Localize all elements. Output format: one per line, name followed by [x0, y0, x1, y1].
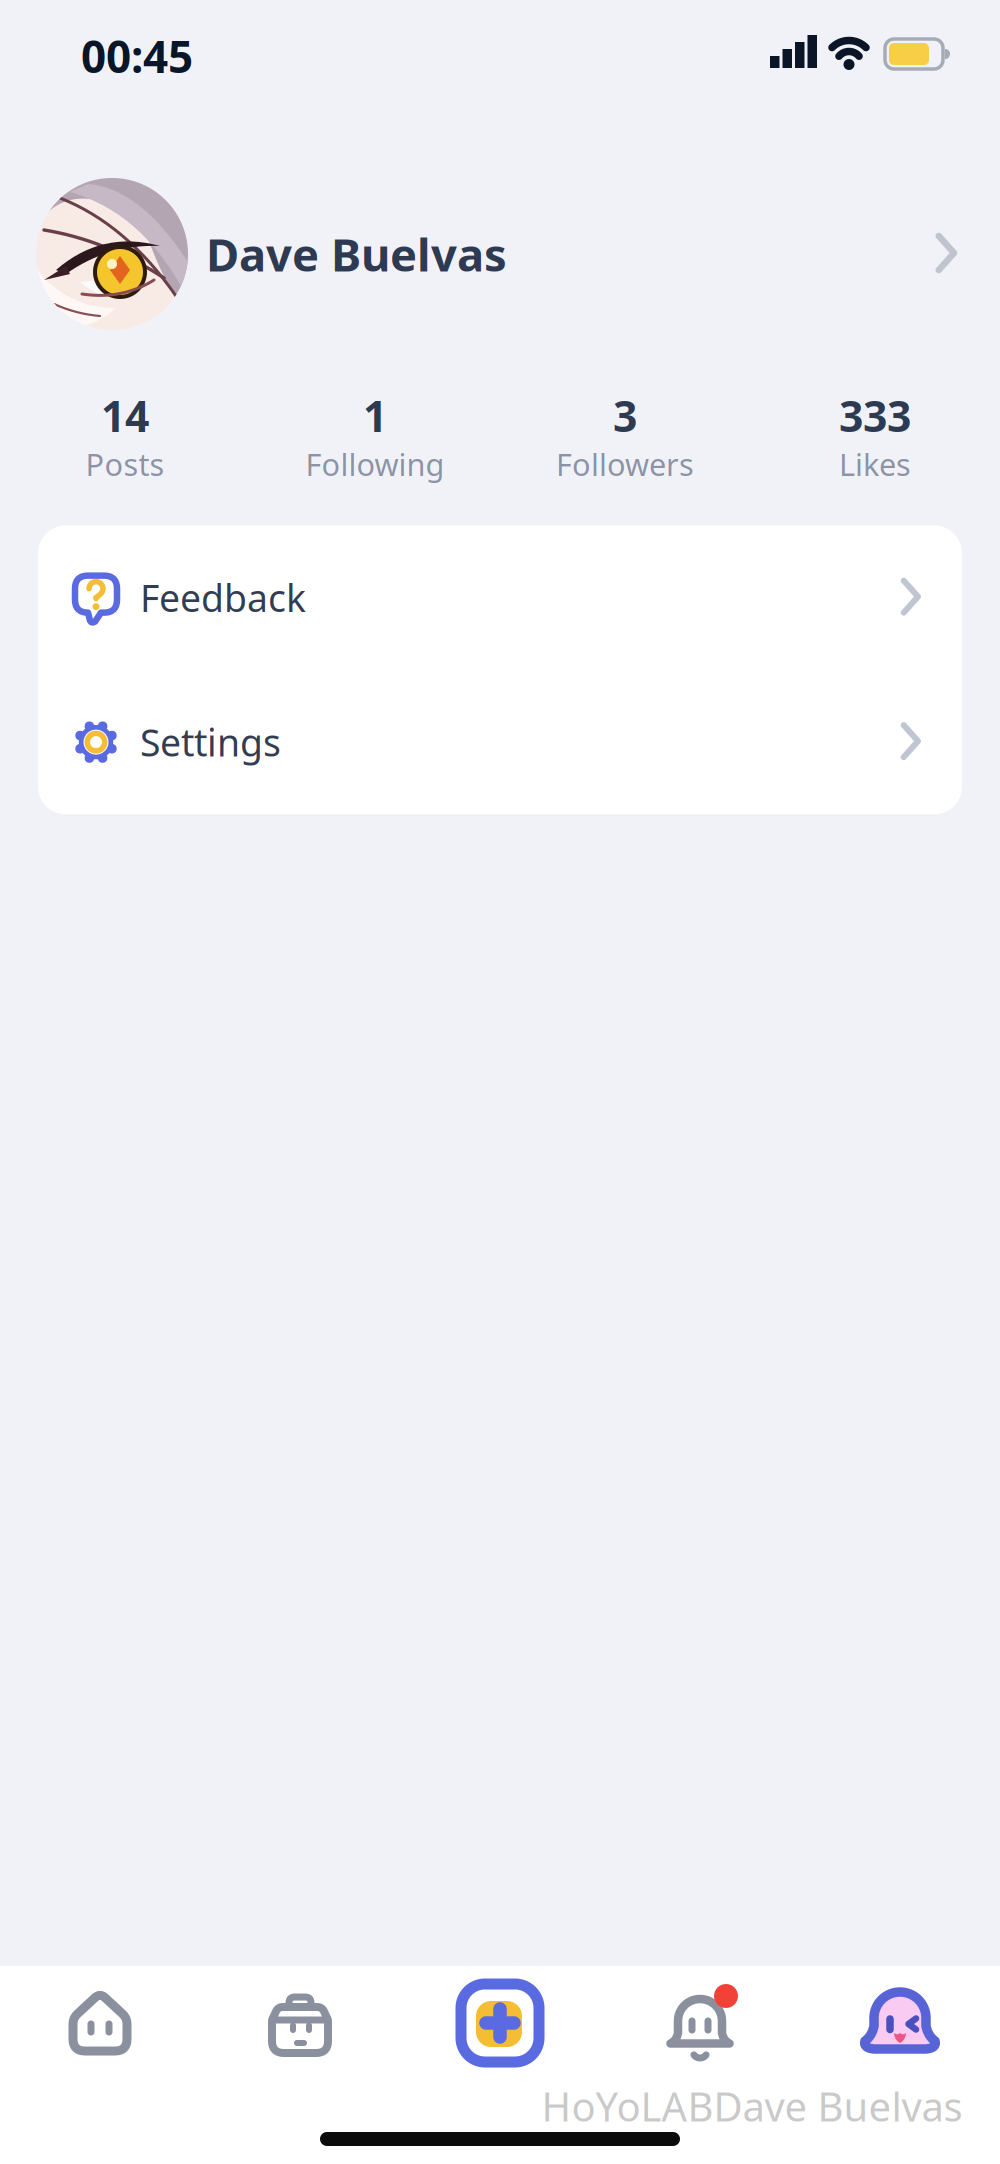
staticText: 3 [613, 387, 637, 444]
staticText: 333 [839, 387, 911, 444]
button[interactable]: Settings [38, 670, 962, 814]
button[interactable]: 3 [500, 387, 750, 484]
button[interactable]: Dave Buelvas [0, 178, 1000, 330]
staticText: 1 [363, 387, 387, 444]
button[interactable]: Me [800, 1983, 1000, 2063]
staticText: Feedback [140, 573, 306, 622]
staticText: Dave Buelvas [206, 224, 507, 284]
button[interactable]: Home [0, 1985, 200, 2061]
button[interactable]: Tools [200, 1985, 400, 2061]
staticText: 00:45 [81, 27, 193, 85]
button[interactable]: Notifications [600, 1985, 800, 2061]
staticText: Followers [556, 444, 694, 484]
button[interactable]: 14 [0, 387, 250, 484]
staticText: Following [305, 444, 444, 484]
staticText: Settings [140, 717, 281, 767]
button[interactable]: Post [400, 1982, 600, 2064]
staticText: Posts [85, 444, 164, 484]
button[interactable]: 1 [250, 387, 500, 484]
button[interactable]: 333 [750, 387, 1000, 484]
button[interactable]: Feedback [38, 525, 962, 670]
staticText: Likes [839, 444, 911, 484]
staticText: HoYoLABDave Buelvas [541, 2079, 962, 2132]
staticText: 14 [101, 387, 149, 444]
